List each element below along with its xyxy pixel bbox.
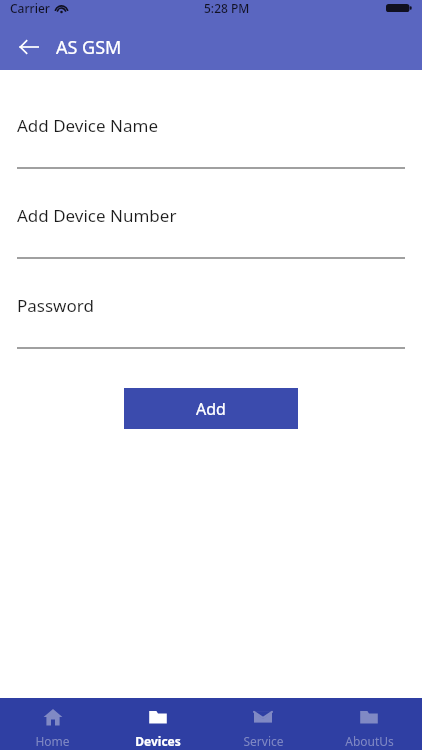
staticText: AS GSM [56,35,122,60]
staticText: Add Device Number [17,204,177,227]
button[interactable]: Add [124,388,298,429]
staticText: Service [243,733,284,749]
staticText: AboutUs [345,733,394,749]
staticText: 5:28 PM [204,0,250,16]
button[interactable]: Devices [105,698,210,750]
button[interactable]: Service [210,698,316,750]
staticText: Home [35,733,70,749]
staticText: Password [17,294,94,317]
staticText: Add [196,398,226,420]
staticText: Add Device Name [17,114,158,137]
staticText: Carrier [10,0,50,16]
button[interactable]: AboutUs [316,698,422,750]
staticText: Devices [135,733,181,749]
button[interactable]: Back [12,30,46,64]
button[interactable]: Home [0,698,105,750]
